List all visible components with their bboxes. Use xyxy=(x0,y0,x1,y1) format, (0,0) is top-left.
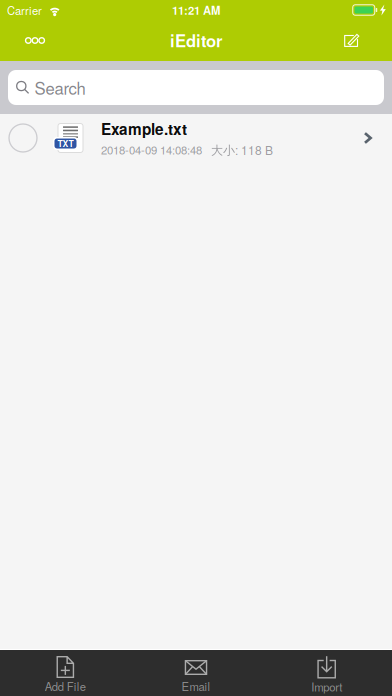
staticText: 大小: 118 B xyxy=(211,141,273,158)
staticText: TXT xyxy=(57,137,73,150)
button[interactable]: More options xyxy=(13,20,57,61)
button[interactable]: Search xyxy=(8,70,384,105)
button[interactable]: Compose new document xyxy=(330,20,374,61)
staticText: Email xyxy=(181,678,210,694)
staticText: Add File xyxy=(45,678,86,694)
staticText: iEditor xyxy=(170,29,222,52)
button[interactable]: Email xyxy=(131,650,261,696)
staticText: Example.txt xyxy=(101,118,187,140)
button[interactable]: Import xyxy=(261,650,392,696)
staticText: Search xyxy=(34,76,85,99)
staticText: 11:21 AM xyxy=(172,2,220,18)
button[interactable]: TXT xyxy=(0,114,392,162)
button[interactable]: Add File xyxy=(0,650,131,696)
staticText: Import xyxy=(311,678,342,695)
staticText: Carrier xyxy=(7,2,42,18)
staticText: 2018-04-09 14:08:48 xyxy=(101,142,202,158)
